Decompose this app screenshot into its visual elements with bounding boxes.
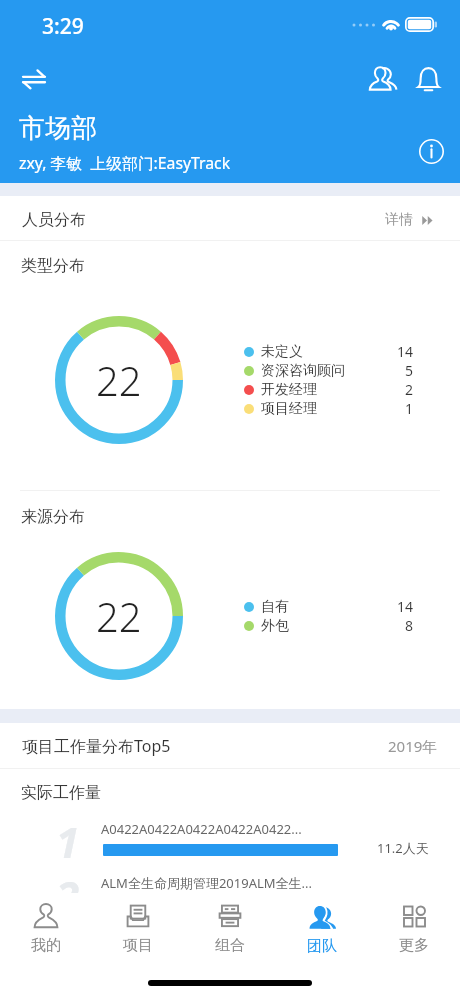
staticText: 14 bbox=[397, 342, 414, 361]
button[interactable]: 更多 bbox=[368, 896, 460, 962]
staticText: 2019年 bbox=[388, 736, 438, 756]
staticText: 详情 bbox=[385, 211, 413, 229]
button[interactable]: 项目经理 bbox=[244, 399, 414, 418]
staticText: 项目经理 bbox=[261, 400, 317, 418]
button[interactable]: 2 bbox=[0, 874, 460, 922]
staticText: 团队 bbox=[307, 937, 337, 956]
button[interactable]: 项目 bbox=[92, 896, 184, 962]
staticText: 来源分布 bbox=[21, 507, 85, 527]
staticText: 更多 bbox=[399, 936, 429, 955]
button[interactable]: Switch bbox=[11, 56, 57, 102]
staticText: 11.2人天 bbox=[377, 839, 429, 857]
staticText: 市场部 bbox=[19, 112, 97, 145]
button[interactable]: 人员分布 bbox=[0, 198, 460, 242]
button[interactable]: 开发经理 bbox=[244, 380, 414, 399]
staticText: 我的 bbox=[31, 936, 61, 955]
button[interactable]: 未定义 bbox=[244, 342, 414, 361]
staticText: 项目工作量分布Top5 bbox=[22, 735, 171, 757]
staticText: 2 bbox=[56, 867, 80, 915]
staticText: 8 bbox=[405, 616, 414, 635]
staticText: 组合 bbox=[215, 936, 245, 955]
button[interactable]: Notifications bbox=[405, 56, 451, 102]
button[interactable]: 团队 bbox=[276, 896, 368, 962]
staticText: 人员分布 bbox=[22, 210, 86, 230]
button[interactable]: 项目工作量分布Top5 bbox=[0, 723, 460, 768]
staticText: ALM全生命周期管理2019ALM全生... bbox=[101, 874, 313, 892]
staticText: 资深咨询顾问 bbox=[261, 362, 345, 380]
button[interactable]: 组合 bbox=[184, 896, 276, 962]
staticText: 项目 bbox=[123, 936, 153, 955]
staticText: 未定义 bbox=[261, 343, 303, 361]
staticText: 外包 bbox=[261, 617, 289, 635]
staticText: 22 bbox=[96, 589, 142, 643]
staticText: 2 bbox=[405, 380, 414, 399]
staticText: 实际工作量 bbox=[21, 783, 101, 803]
staticText: 14 bbox=[397, 597, 414, 616]
button[interactable]: 自有 bbox=[244, 597, 414, 616]
staticText: 1 bbox=[405, 399, 414, 418]
staticText: A0422A0422A0422A0422A0422... bbox=[101, 820, 302, 838]
button[interactable]: Members bbox=[360, 54, 406, 100]
button[interactable]: 外包 bbox=[244, 616, 414, 635]
staticText: 自有 bbox=[261, 598, 289, 616]
staticText: 22 bbox=[96, 353, 142, 407]
staticText: zxy, 李敏 上级部门:EasyTrack bbox=[19, 152, 231, 174]
staticText: 5 bbox=[405, 361, 414, 380]
button[interactable]: 资深咨询顾问 bbox=[244, 361, 414, 380]
button[interactable]: 1 bbox=[0, 820, 460, 868]
button[interactable]: 我的 bbox=[0, 896, 92, 962]
staticText: 3:29 bbox=[42, 12, 84, 41]
staticText: 开发经理 bbox=[261, 381, 317, 399]
button[interactable]: Info bbox=[410, 130, 452, 172]
staticText: 类型分布 bbox=[21, 256, 85, 276]
staticText: 1 bbox=[56, 813, 80, 861]
